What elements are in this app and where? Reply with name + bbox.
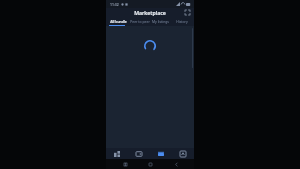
button[interactable]: My listings [150,17,171,25]
button[interactable]: Back [169,159,183,169]
button[interactable]: All bundle [108,17,129,25]
button[interactable]: Recent apps [118,159,132,169]
staticText: Peer to peer [130,19,150,24]
button[interactable]: Peer to peer [129,17,150,25]
button[interactable]: Dashboard [106,148,128,159]
button[interactable]: Home [143,159,157,169]
staticText: History [176,19,188,24]
button[interactable]: Profile [172,148,194,159]
button[interactable]: Scan code [184,9,191,16]
staticText: 11:32 [110,2,119,7]
button[interactable]: Marketplace [150,148,172,159]
staticText: Marketplace [134,9,166,16]
button[interactable]: History [171,17,192,25]
button[interactable]: Wallet [128,148,150,159]
staticText: All bundle [110,19,127,24]
staticText: My listings [152,19,169,24]
